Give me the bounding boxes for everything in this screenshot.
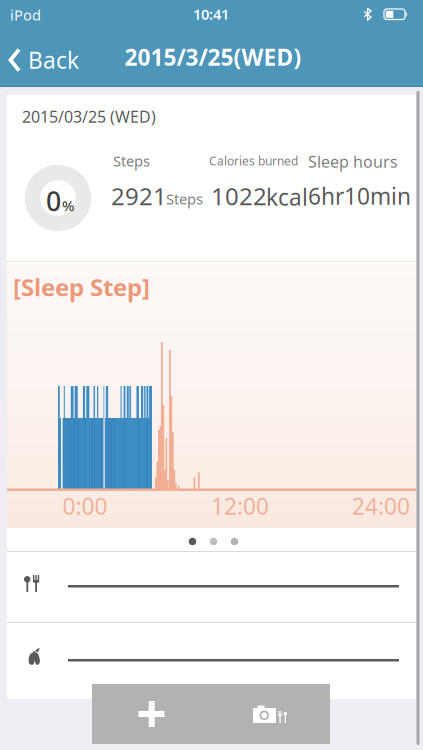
staticText: 6hr10min <box>308 181 411 211</box>
staticText: kcal <box>266 182 308 212</box>
staticText: Sleep hours <box>308 151 398 172</box>
staticText: 0:00 <box>62 491 107 521</box>
staticText: 10:41 <box>193 4 229 24</box>
staticText: iPod <box>10 5 41 24</box>
staticText: [Sleep Step] <box>13 271 150 303</box>
staticText: Steps <box>166 189 203 208</box>
staticText: 12:00 <box>211 491 269 521</box>
button[interactable]: Add exercise <box>7 623 416 699</box>
staticText: 0 <box>46 183 61 219</box>
staticText: 24:00 <box>352 491 410 521</box>
staticText: Calories burned <box>209 153 298 169</box>
staticText: 2921 <box>111 180 167 212</box>
staticText: Back <box>28 45 79 75</box>
button[interactable]: Add meal <box>7 552 416 622</box>
staticText: % <box>62 196 74 215</box>
button[interactable]: Add <box>92 684 211 744</box>
staticText: Steps <box>113 151 150 170</box>
button[interactable]: Photo meal <box>211 684 330 744</box>
button[interactable]: Back <box>9 45 79 75</box>
staticText: 2015/3/25(WED) <box>124 42 301 72</box>
staticText: 1022 <box>211 180 267 212</box>
staticText: 2015/03/25 (WED) <box>22 106 156 127</box>
